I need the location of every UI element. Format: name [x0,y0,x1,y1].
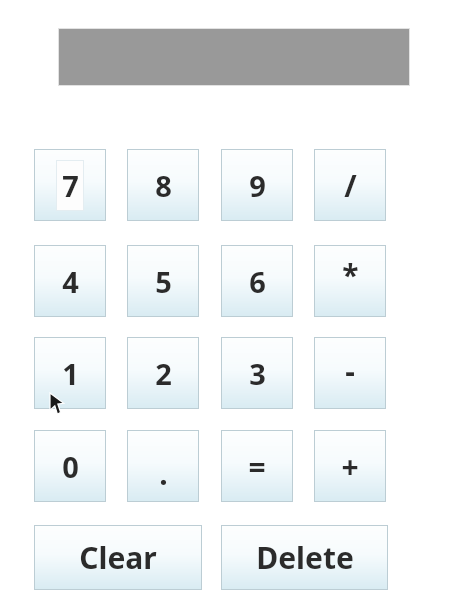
button[interactable]: 5 [127,245,199,317]
button[interactable]: + [314,430,386,502]
staticText: Clear [79,537,157,578]
staticText: 4 [62,262,79,301]
staticText: 0 [62,447,79,486]
staticText: = [248,446,266,487]
button[interactable]: . [127,430,199,502]
button[interactable]: 9 [221,149,293,221]
button[interactable]: Delete [221,525,388,590]
staticText: - [345,350,355,391]
staticText: * [342,254,359,295]
button[interactable]: - [314,337,386,409]
button[interactable]: 7 [34,149,106,221]
button[interactable]: * [314,245,386,317]
button[interactable]: = [221,430,293,502]
staticText: . [159,453,168,494]
button[interactable]: 2 [127,337,199,409]
staticText: 2 [155,354,172,393]
staticText: 6 [249,262,266,301]
staticText: + [341,446,359,487]
staticText: 1 [62,354,79,393]
staticText: 8 [155,166,172,205]
button[interactable]: 3 [221,337,293,409]
staticText: 9 [249,166,266,205]
staticText: 3 [249,354,266,393]
staticText: 7 [62,166,79,205]
button[interactable]: Display [58,28,410,86]
staticText: / [344,165,357,206]
button[interactable]: 1 [34,337,106,409]
staticText: 5 [155,262,172,301]
button[interactable]: 0 [34,430,106,502]
button[interactable]: 4 [34,245,106,317]
staticText: Delete [256,537,354,578]
button[interactable]: Clear [34,525,202,590]
button[interactable]: / [314,149,386,221]
button[interactable]: 8 [127,149,199,221]
button[interactable]: 6 [221,245,293,317]
